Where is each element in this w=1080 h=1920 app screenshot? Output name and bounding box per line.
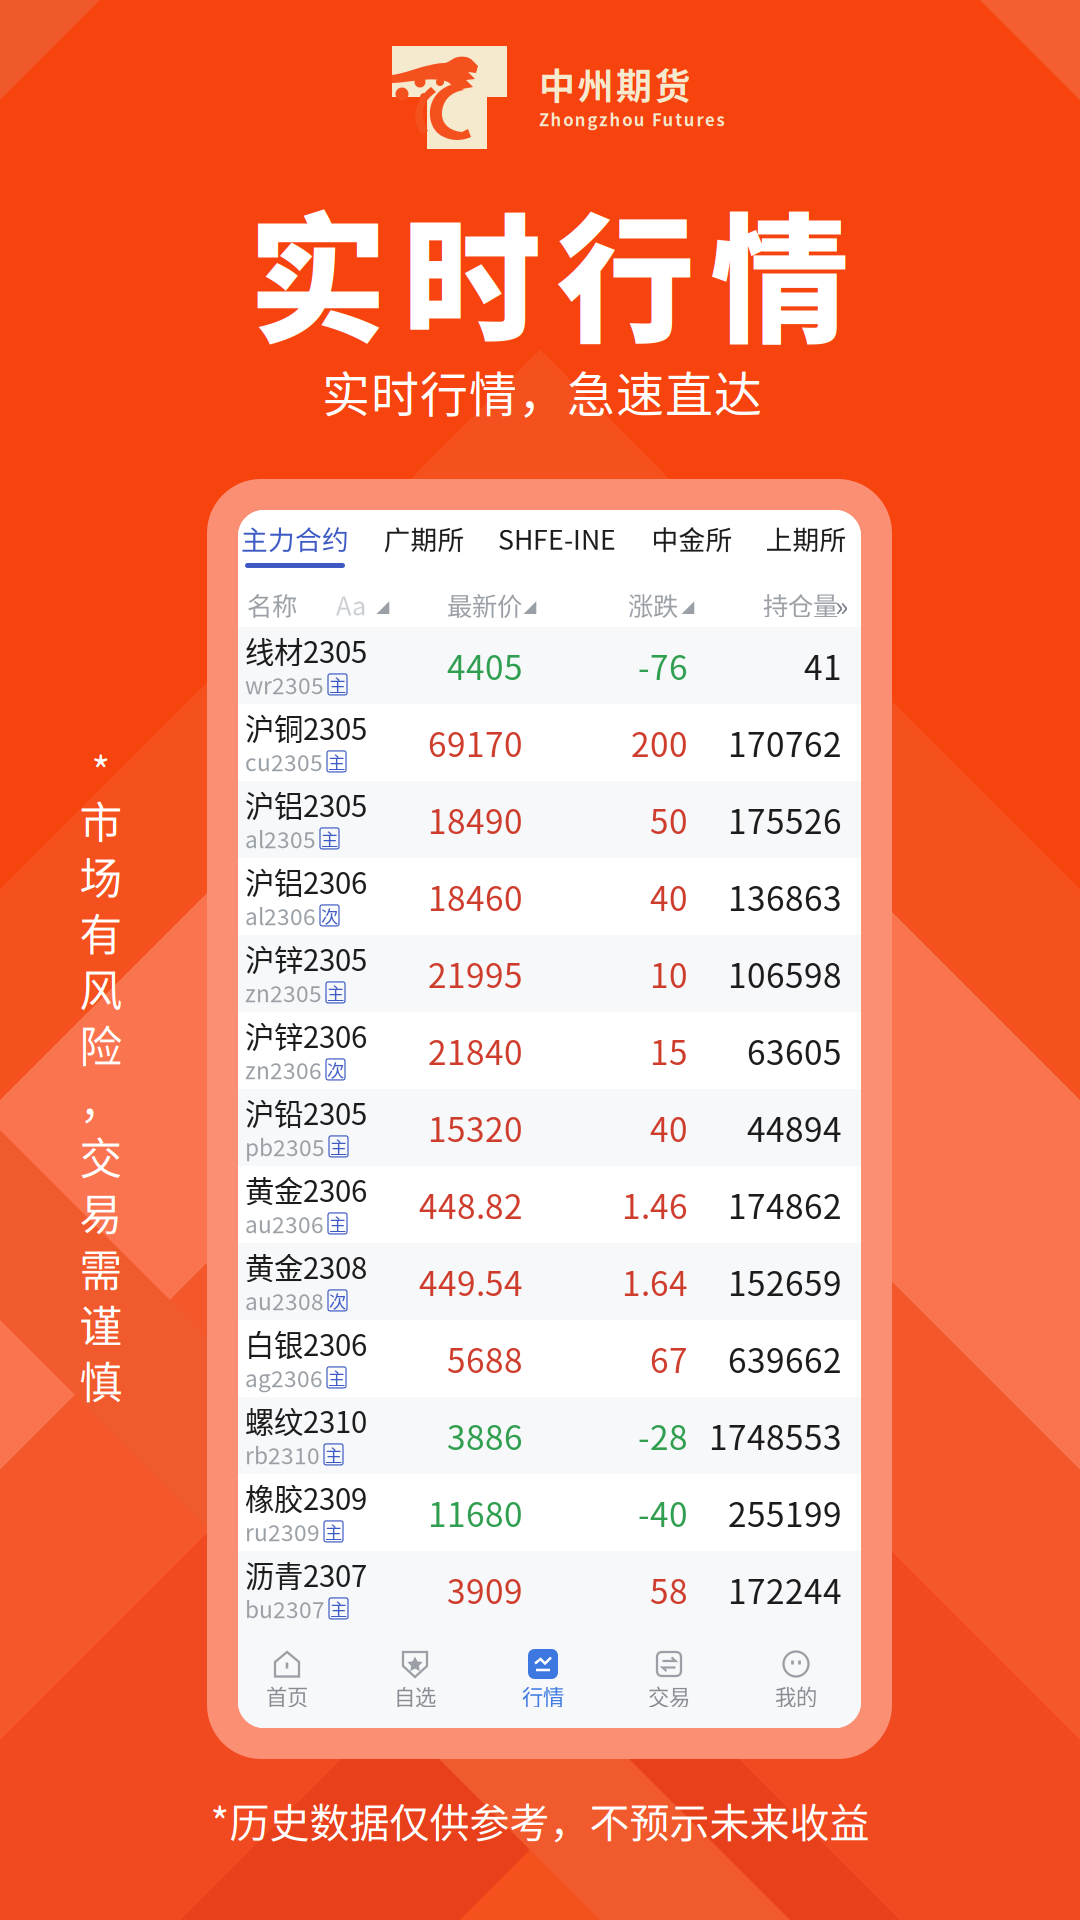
staticText: 次 [329,1288,346,1313]
staticText: 5688 [447,1334,523,1383]
staticText: 沪铅2305 [245,1091,367,1133]
staticText: 行情 [522,1681,564,1711]
staticText: 黄金2308 [245,1245,367,1287]
staticText: 主 [329,672,346,697]
staticText: 次 [321,903,338,928]
button[interactable]: 线材2305 [238,627,861,704]
staticText: 次 [327,1057,344,1082]
staticText: al2306 [245,899,316,932]
staticText: 1.46 [622,1180,688,1229]
staticText: -28 [638,1411,688,1460]
staticText: au2306 [245,1207,324,1240]
staticText: 需 [79,1237,122,1299]
staticText: 线材2305 [245,629,367,671]
staticText: 21840 [428,1026,523,1075]
staticText: cu2305 [245,745,323,778]
button[interactable]: 螺纹2310 [238,1397,861,1474]
button[interactable]: 首页 [232,1647,342,1711]
staticText: ◢ [523,597,536,616]
staticText: 螺纹2310 [245,1399,367,1441]
staticText: 涨跌 [628,586,678,623]
staticText: *历史数据仅供参考，不预示未来收益 [210,1791,869,1849]
staticText: -40 [638,1488,688,1537]
button[interactable]: 橡胶2309 [238,1474,861,1551]
staticText: 主 [325,1442,342,1467]
button[interactable]: 中金所 [642,518,742,578]
staticText: 白银2306 [245,1322,367,1364]
staticText: Aa [336,586,366,623]
staticText: bu2307 [245,1592,325,1625]
staticText: ru2309 [245,1515,320,1548]
staticText: 44894 [747,1103,842,1152]
button[interactable]: 广期所 [374,518,474,578]
button[interactable]: 上期所 [756,518,856,578]
staticText: 172244 [728,1565,842,1614]
staticText: 有 [79,901,122,963]
staticText: wr2305 [245,668,324,701]
staticText: 自选 [394,1681,436,1711]
staticText: 11680 [428,1488,523,1537]
staticText: 67 [650,1334,688,1383]
button[interactable]: 黄金2308 [238,1243,861,1320]
staticText: 主 [330,1134,347,1159]
staticText: zn2306 [245,1053,322,1086]
staticText: 449.54 [419,1257,523,1306]
staticText: 18460 [428,872,523,921]
staticText: 中州期货 [539,58,690,110]
staticText: 风 [79,957,122,1019]
staticText: 58 [650,1565,688,1614]
button[interactable]: 行情 [488,1647,598,1711]
staticText: 1748553 [709,1411,842,1460]
staticText: 交 [79,1125,122,1187]
button[interactable]: 沪铝2305 [238,781,861,858]
button[interactable]: 沪铝2306 [238,858,861,935]
staticText: 15 [650,1026,688,1075]
button[interactable]: SHFE-INE [493,518,621,578]
button[interactable]: 沪铜2305 [238,704,861,781]
staticText: 21995 [428,949,523,998]
staticText: Zhongzhou Futures [539,107,725,131]
staticText: 易 [79,1181,122,1243]
staticText: 广期所 [383,519,464,557]
button[interactable]: 沪锌2306 [238,1012,861,1089]
staticText: zn2305 [245,976,322,1009]
button[interactable]: 自选 [360,1647,470,1711]
staticText: pb2305 [245,1130,325,1163]
staticText: 首页 [266,1681,308,1711]
button[interactable]: 黄金2306 [238,1166,861,1243]
button[interactable]: 白银2306 [238,1320,861,1397]
staticText: 170762 [728,718,842,767]
staticText: SHFE-INE [498,519,616,557]
staticText: 3909 [447,1565,523,1614]
staticText: ◢ [681,597,694,616]
staticText: 沪铝2305 [245,783,367,825]
button[interactable]: 我的 [741,1647,851,1711]
staticText: 主 [328,749,345,774]
staticText: 沪铝2306 [245,860,367,902]
button[interactable]: 沪锌2305 [238,935,861,1012]
staticText: 152659 [728,1257,842,1306]
staticText: 15320 [428,1103,523,1152]
staticText: * [91,740,110,798]
staticText: 主 [321,826,338,851]
staticText: 黄金2306 [245,1168,367,1210]
staticText: al2305 [245,822,316,855]
staticText: 市 [79,789,122,851]
staticText: 沪锌2305 [245,937,367,979]
staticText: 持仓量 [763,586,838,623]
staticText: 50 [650,795,688,844]
staticText: 63605 [747,1026,842,1075]
staticText: rb2310 [245,1438,320,1471]
button[interactable]: 沪铅2305 [238,1089,861,1166]
button[interactable]: 交易 [614,1647,724,1711]
staticText: 实时行情 [248,170,849,370]
staticText: 主力合约 [241,519,349,557]
staticText: 40 [650,1103,688,1152]
staticText: 实时行情，急速直达 [322,356,762,426]
staticText: 主 [328,1365,345,1390]
button[interactable]: 主力合约 [233,518,357,578]
staticText: 10 [650,949,688,998]
staticText: 慎 [79,1349,122,1411]
staticText: 名称 [247,586,297,623]
button[interactable]: 沥青2307 [238,1551,861,1628]
